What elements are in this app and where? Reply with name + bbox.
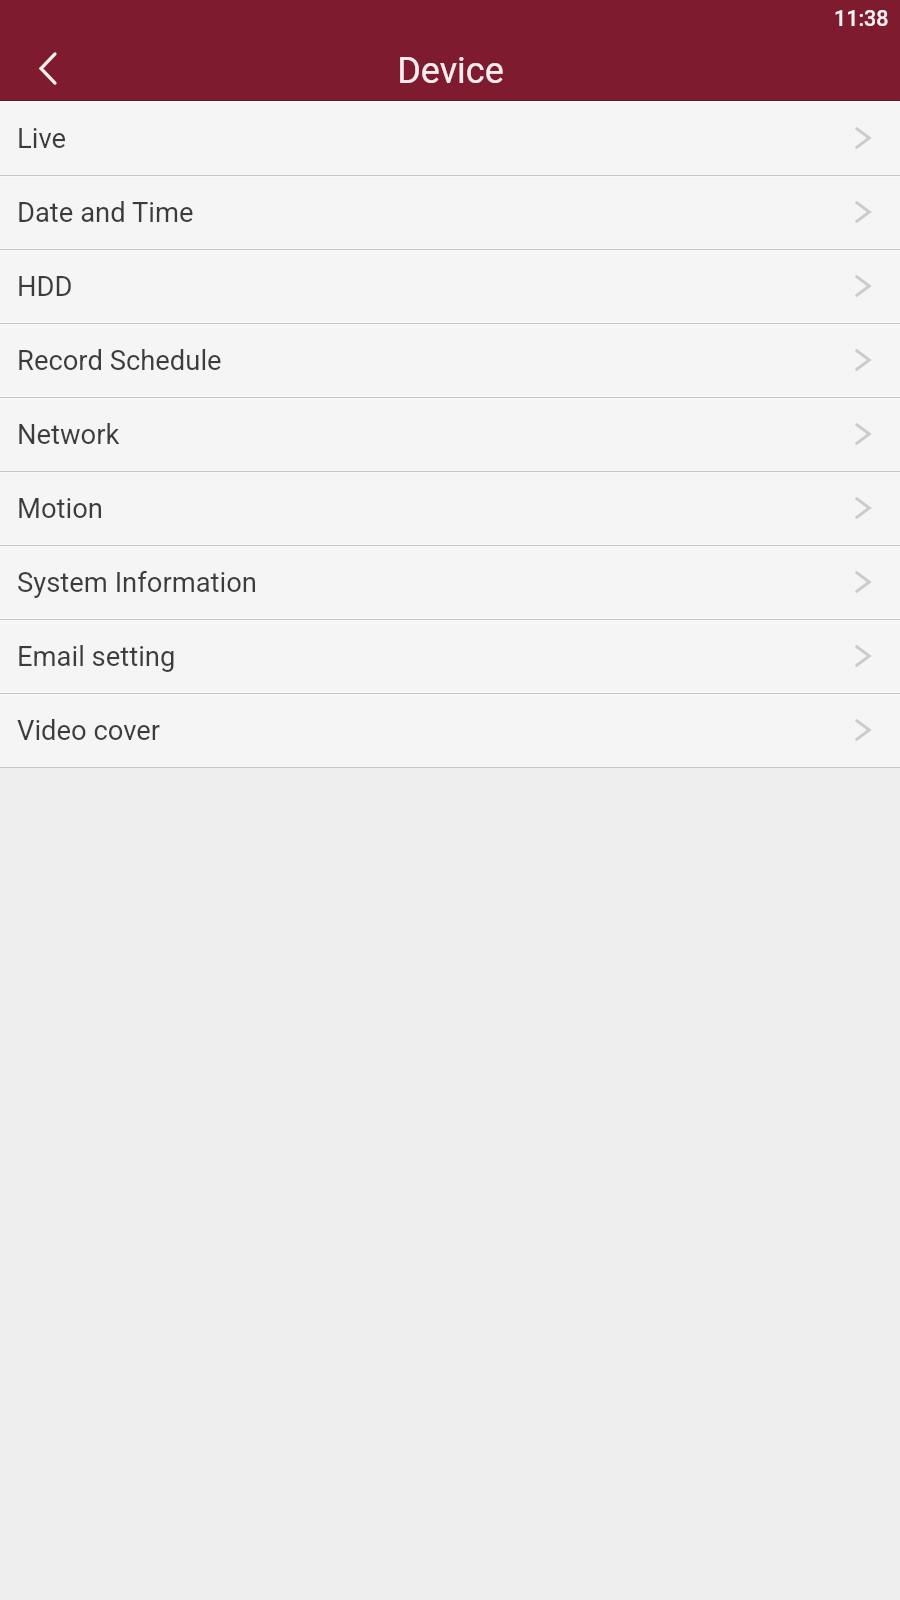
staticText: System Information — [17, 567, 257, 599]
staticText: Record Schedule — [17, 345, 222, 377]
staticText: Motion — [17, 493, 103, 525]
button[interactable]: Motion — [0, 472, 900, 546]
staticText: Email setting — [17, 641, 176, 673]
staticText: Video cover — [17, 715, 161, 747]
button[interactable]: HDD — [0, 250, 900, 324]
button[interactable]: Email setting — [0, 620, 900, 694]
button[interactable]: Live — [0, 102, 900, 176]
button[interactable]: System Information — [0, 546, 900, 620]
button[interactable]: Date and Time — [0, 176, 900, 250]
staticText: HDD — [17, 271, 73, 303]
button[interactable]: Network — [0, 398, 900, 472]
staticText: 11:38 — [834, 6, 889, 31]
staticText: Network — [17, 419, 120, 451]
button[interactable]: Video cover — [0, 694, 900, 768]
button[interactable]: Back — [0, 33, 96, 101]
staticText: Date and Time — [17, 197, 194, 229]
staticText: Device — [397, 50, 504, 92]
button[interactable]: Record Schedule — [0, 324, 900, 398]
staticText: Live — [17, 123, 67, 155]
